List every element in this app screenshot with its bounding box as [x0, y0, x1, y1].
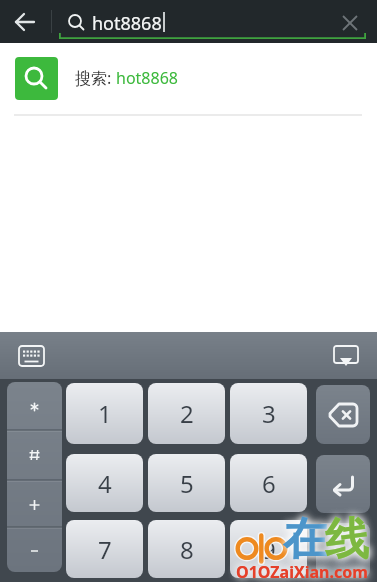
button[interactable] — [316, 455, 370, 513]
button[interactable] — [316, 385, 370, 444]
staticText: hot8868 — [116, 67, 178, 89]
button[interactable] — [7, 524, 62, 572]
staticText: 6 — [262, 467, 276, 500]
staticText: hot8868 — [92, 11, 162, 36]
staticText: O1OZaiXian.com — [236, 561, 368, 582]
staticText: 9 — [262, 533, 276, 566]
button[interactable] — [8, 4, 42, 40]
staticText: 4 — [98, 467, 112, 500]
staticText: 7 — [98, 533, 112, 566]
staticText: 在 — [283, 512, 327, 567]
staticText: 8 — [180, 533, 194, 566]
button[interactable]: 9 — [230, 520, 307, 578]
button[interactable] — [316, 523, 370, 578]
staticText: 1 — [98, 397, 112, 430]
button[interactable] — [7, 382, 62, 429]
button[interactable]: 4 — [66, 454, 143, 512]
button[interactable]: 6 — [230, 454, 307, 512]
staticText: 在 — [283, 512, 327, 567]
staticText: 5 — [180, 467, 194, 500]
button[interactable]: 1 — [66, 383, 143, 444]
button[interactable]: 5 — [148, 454, 225, 512]
button[interactable] — [10, 339, 52, 373]
button[interactable]: 8 — [148, 520, 225, 578]
button[interactable]: 2 — [148, 383, 225, 444]
staticText: 2 — [180, 397, 194, 430]
staticText: 线 — [325, 512, 369, 567]
button[interactable] — [7, 476, 62, 524]
button[interactable] — [325, 339, 367, 373]
staticText: O1OZaiXian.com — [236, 561, 368, 582]
staticText: 3 — [262, 397, 276, 430]
button[interactable]: 3 — [230, 383, 307, 444]
staticText: 搜索: — [75, 67, 116, 89]
button[interactable]: 搜索: — [0, 43, 377, 113]
button[interactable] — [7, 429, 62, 476]
staticText: 线 — [325, 512, 369, 567]
button[interactable] — [336, 9, 364, 37]
button[interactable]: 7 — [66, 520, 143, 578]
